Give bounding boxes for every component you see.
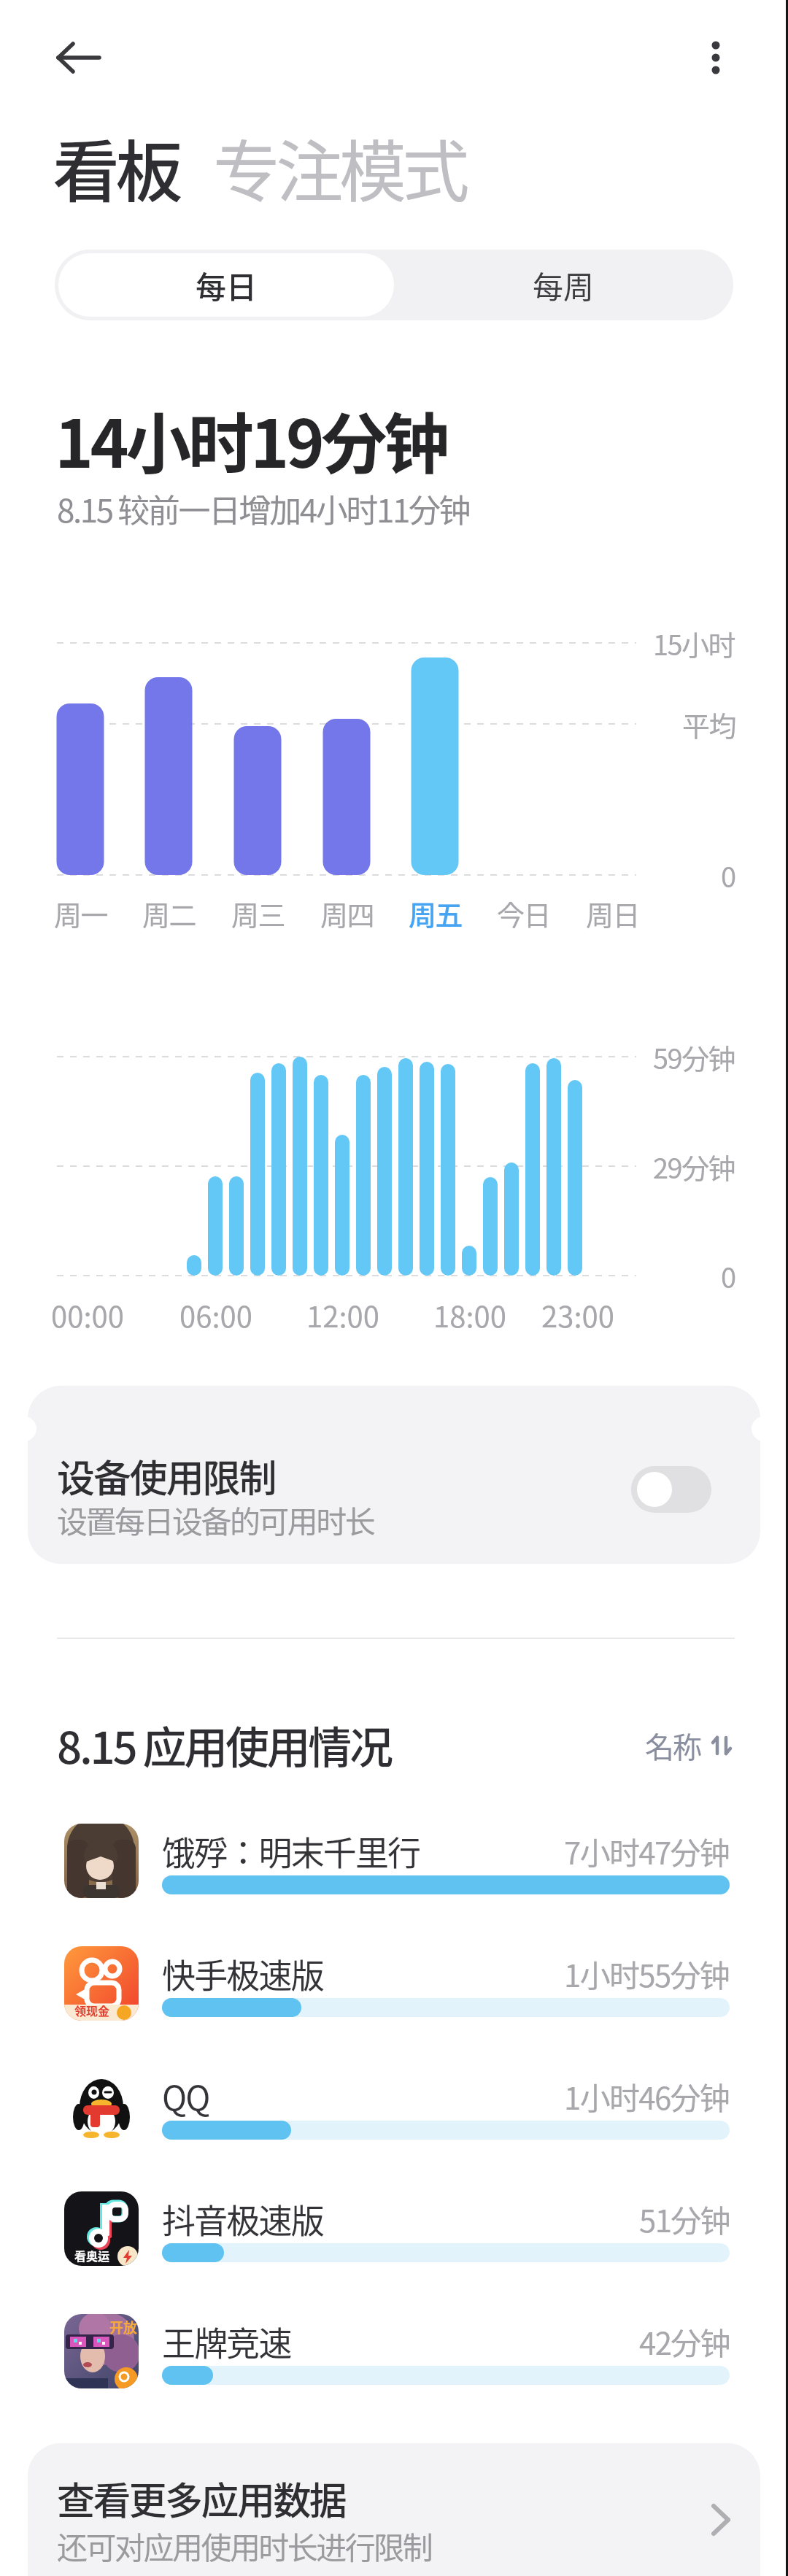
staticText: 专注模式 [213,118,466,215]
staticText: 饿殍：明末千里行 [162,1827,420,1875]
staticText: 设置每日设备的可用时长 [57,1497,374,1542]
button[interactable]: 设备使用限制 [28,1386,760,1564]
staticText: 18:00 [433,1294,506,1336]
staticText: 开放 [109,2317,138,2337]
staticText: 每周 [533,263,595,307]
staticText: 领现金 [74,2002,110,2018]
staticText: 29分钟 [653,1146,735,1187]
staticText: 8.15 应用使用情况 [57,1713,391,1776]
staticText: 06:00 [179,1294,252,1336]
staticText: 看板 [53,118,179,215]
staticText: 1小时55分钟 [564,1951,730,1996]
button[interactable] [44,2069,744,2178]
button[interactable]: 每周 [394,250,733,320]
staticText: 快手极速版 [162,1949,323,1998]
staticText: QQ [162,2072,209,2121]
staticText: 查看更多应用数据 [57,2471,346,2526]
button[interactable] [44,2191,744,2301]
staticText: 8.15 较前一日增加4小时11分钟 [57,485,470,532]
button[interactable] [693,29,738,86]
button[interactable] [631,1466,711,1513]
staticText: 周五 [409,893,462,933]
button[interactable] [613,1715,737,1773]
staticText: 51分钟 [639,2197,730,2241]
staticText: 12:00 [306,1294,379,1336]
staticText: 15小时 [653,623,735,663]
button[interactable]: 每日 [58,253,394,317]
button[interactable] [44,1824,744,1933]
staticText: 周一 [54,893,107,933]
button[interactable] [44,2314,744,2423]
button[interactable]: 查看更多应用数据 [28,2443,760,2576]
staticText: 14小时19分钟 [55,392,447,487]
staticText: 7小时47分钟 [564,1829,730,1873]
staticText: 每日 [196,263,258,307]
staticText: 59分钟 [653,1037,735,1077]
staticText: 平均 [682,704,735,744]
staticText: 00:00 [51,1294,124,1336]
staticText: 0 [721,855,735,895]
staticText: 42分钟 [639,2319,730,2364]
staticText: 0 [721,1256,735,1296]
staticText: 23:00 [541,1294,614,1336]
staticText: 看奥运 [74,2247,110,2264]
staticText: 周日 [586,893,639,933]
staticText: 周三 [231,893,285,933]
staticText: 周二 [142,893,196,933]
staticText: 1小时46分钟 [564,2074,730,2118]
staticText: 今日 [497,893,550,933]
staticText: 抖音极速版 [162,2194,323,2243]
staticText: 设备使用限制 [57,1449,276,1503]
staticText: 周四 [320,893,374,933]
staticText: 名称 [645,1724,700,1767]
button[interactable] [44,1946,744,2056]
staticText: 还可对应用使用时长进行限制 [57,2523,432,2568]
button[interactable] [44,29,114,86]
staticText: 王牌竞速 [162,2317,291,2366]
